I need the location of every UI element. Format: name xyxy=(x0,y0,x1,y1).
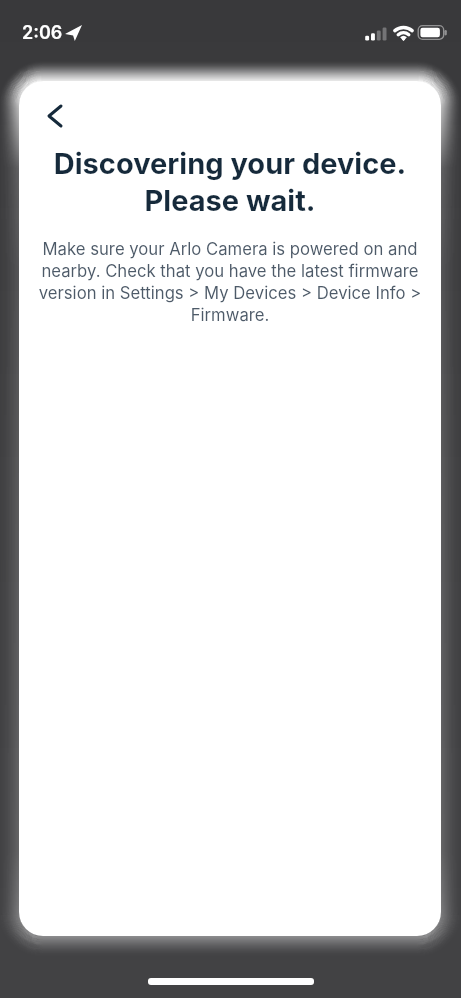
staticText: 2:06 xyxy=(22,22,63,44)
button[interactable] xyxy=(148,978,314,985)
button[interactable] xyxy=(35,96,75,136)
staticText: Make sure your Arlo Camera is powered on… xyxy=(19,239,441,325)
staticText: Discovering your device. Please wait. xyxy=(19,146,441,218)
